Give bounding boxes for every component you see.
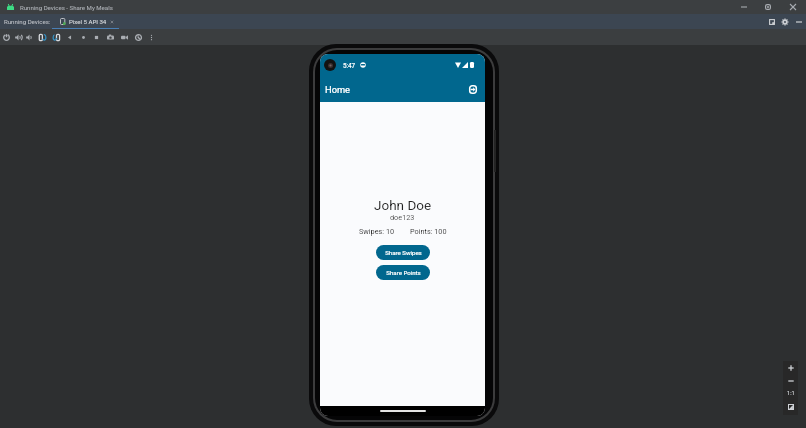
button[interactable]: Hide [792,14,806,29]
button[interactable]: Volume up [12,29,25,45]
staticText: 1:1 [787,390,795,397]
staticText: Points: 100 [410,227,447,236]
staticText: Running Devices - Share My Meals [20,4,113,11]
button[interactable]: Zoom in [783,361,798,374]
button[interactable]: Share Swipes [376,245,430,260]
button[interactable]: Restore [132,29,145,45]
button[interactable]: Record [118,29,131,45]
button[interactable]: Home [77,29,90,45]
staticText: 5:47 [343,62,356,69]
button[interactable]: Volume down [23,29,36,45]
staticText: Home [325,84,351,95]
staticText: Swipes: 10 [359,227,395,236]
button[interactable]: Back [63,29,76,45]
button[interactable]: Power [0,29,13,45]
staticText: John Doe [374,197,432,213]
button[interactable]: Close [786,0,800,14]
staticText: Share Swipes [385,249,422,256]
button[interactable]: More options [145,29,158,45]
button[interactable]: Overview [90,29,103,45]
button[interactable]: Actual size [783,387,798,400]
button[interactable]: Split window [765,14,779,29]
staticText: doe123 [390,213,415,222]
button[interactable]: Screenshot [104,29,117,45]
staticText: Share Points [386,269,421,276]
button[interactable]: Rotate left [36,29,49,45]
staticText: Running Devices: [4,18,51,25]
button[interactable]: Pixel 5 API 34 [52,14,119,29]
button[interactable]: Rotate right [50,29,63,45]
staticText: Pixel 5 API 34 [69,18,107,25]
button[interactable]: Minimize [737,0,751,14]
button[interactable]: Settings [778,14,792,29]
button[interactable]: Zoom to fit [783,400,798,413]
button[interactable]: Restore window [761,0,775,14]
button[interactable]: Zoom out [783,374,798,387]
button[interactable]: Share Points [376,265,430,280]
button[interactable]: Log out [466,82,480,96]
